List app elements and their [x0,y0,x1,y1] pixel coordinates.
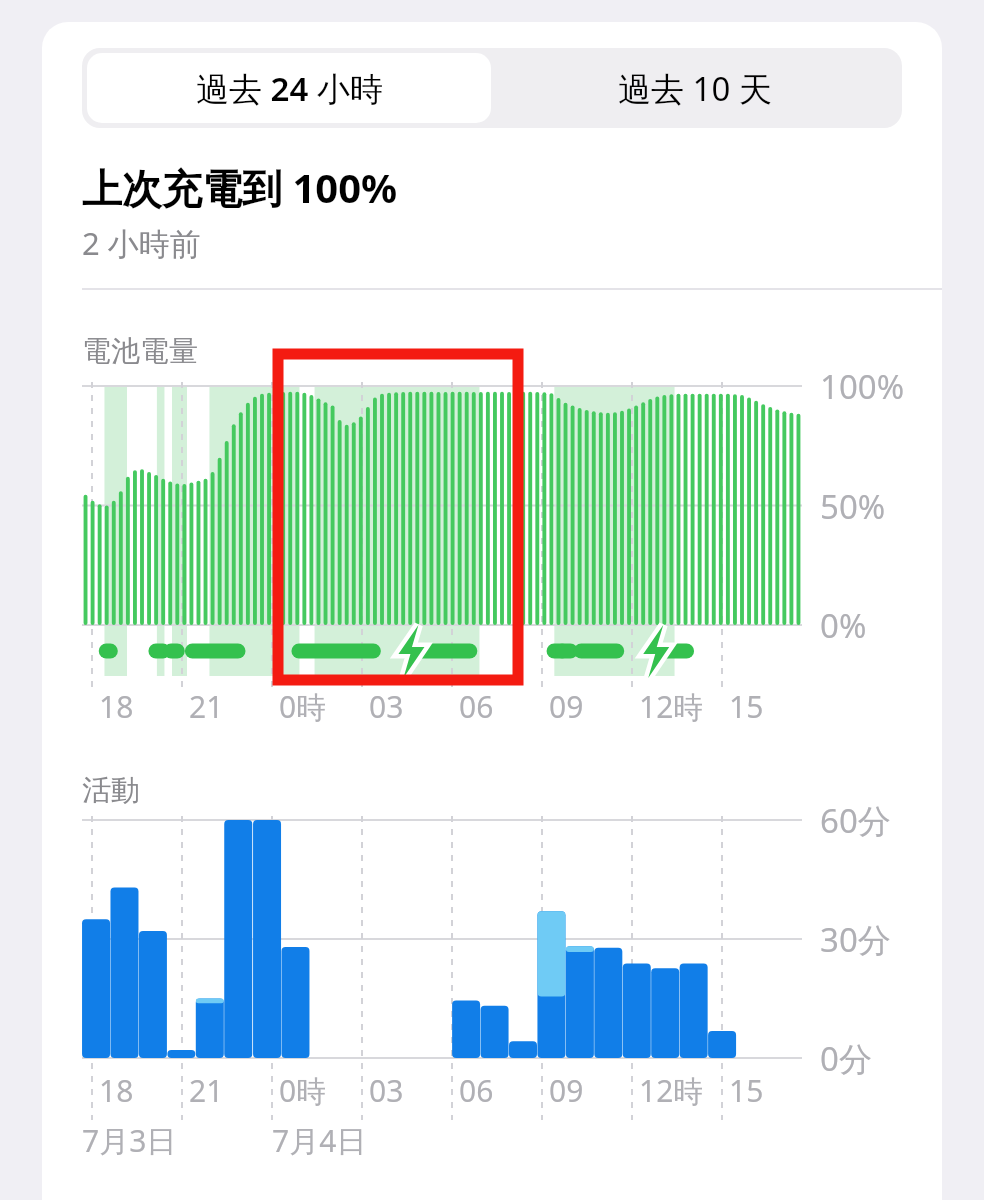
staticText: 21 [189,686,224,727]
staticText: 06 [459,686,494,727]
staticText: 30分 [820,917,891,962]
staticText: 03 [369,1070,404,1111]
button[interactable]: 過去 10 天 [493,53,897,123]
staticText: 21 [189,1070,224,1111]
staticText: 過去 24 小時 [196,66,383,111]
staticText: 7月4日 [272,1120,367,1161]
staticText: 50% [820,484,886,529]
staticText: 電池電量 [82,333,198,370]
staticText: 09 [549,686,584,727]
staticText: 18 [99,1070,134,1111]
staticText: 0分 [820,1036,872,1081]
staticText: 03 [369,686,404,727]
staticText: 18 [99,686,134,727]
staticText: 60分 [820,798,891,843]
staticText: 活動 [82,772,140,809]
button[interactable]: 過去 24 小時 [87,53,491,123]
staticText: 15 [729,686,764,727]
button[interactable]: 電池電量圖表 [0,0,984,1200]
staticText: 0時 [279,1070,327,1111]
staticText: 09 [549,1070,584,1111]
staticText: 100% [820,364,905,409]
staticText: 06 [459,1070,494,1111]
staticText: 過去 10 天 [618,66,772,111]
button[interactable]: 活動圖表 [0,0,984,1200]
staticText: 0% [820,603,867,648]
staticText: 0時 [279,686,327,727]
staticText: 12時 [639,686,704,727]
staticText: 12時 [639,1070,704,1111]
staticText: 15 [729,1070,764,1111]
staticText: 2 小時前 [82,222,201,264]
staticText: 7月3日 [82,1120,177,1161]
staticText: 上次充電到 100% [82,160,398,215]
